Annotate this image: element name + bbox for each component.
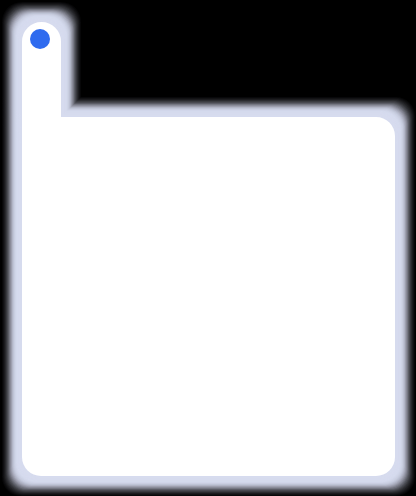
button[interactable]: Flag shaped card with status indicator: [0, 0, 416, 496]
